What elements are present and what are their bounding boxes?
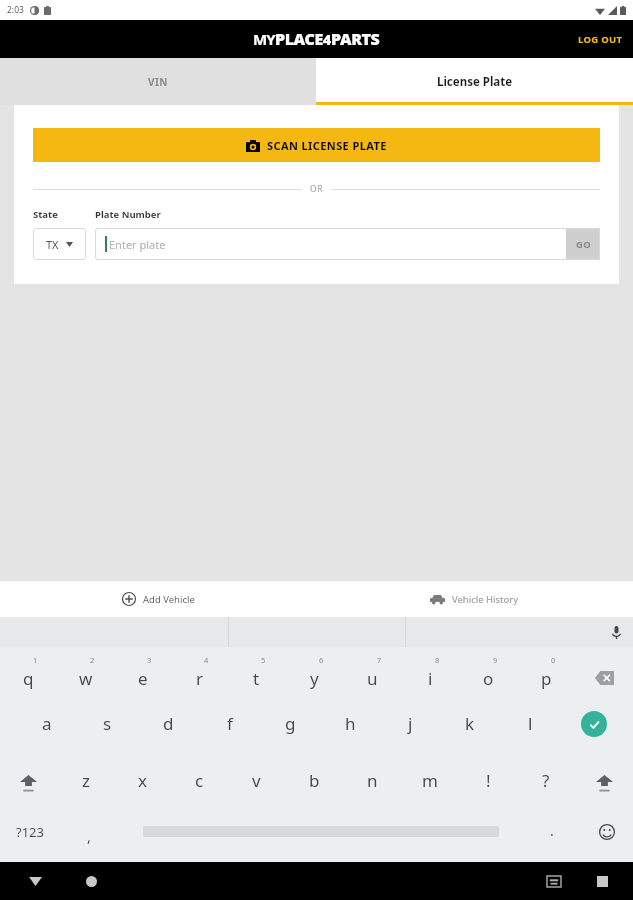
staticText: Add Vehicle bbox=[143, 593, 195, 606]
staticText: p bbox=[541, 667, 552, 690]
staticText: c bbox=[195, 769, 204, 792]
button[interactable]: 2 bbox=[57, 647, 114, 702]
staticText: Vehicle History bbox=[452, 593, 519, 606]
staticText: State bbox=[33, 208, 58, 221]
button[interactable]: TX bbox=[33, 228, 86, 260]
staticText: ?123 bbox=[16, 823, 44, 841]
button[interactable]: l bbox=[500, 702, 560, 757]
button[interactable]: Back bbox=[22, 868, 48, 894]
staticText: 7 bbox=[377, 655, 382, 665]
staticText: 0 bbox=[551, 655, 556, 665]
button[interactable]: 5 bbox=[228, 647, 285, 702]
staticText: i bbox=[428, 667, 433, 690]
button[interactable]: j bbox=[380, 702, 440, 757]
button[interactable]: LOG OUT bbox=[568, 25, 633, 54]
staticText: 3 bbox=[147, 655, 152, 665]
button[interactable]: Vehicle History bbox=[316, 581, 633, 617]
staticText: f bbox=[227, 712, 233, 735]
staticText: 9 bbox=[493, 655, 498, 665]
staticText: v bbox=[252, 769, 261, 792]
staticText: LOG OUT bbox=[578, 33, 623, 46]
button[interactable]: g bbox=[260, 702, 320, 757]
staticText: 8 bbox=[435, 655, 440, 665]
button[interactable]: h bbox=[320, 702, 380, 757]
button[interactable]: m bbox=[401, 757, 459, 812]
button[interactable]: f bbox=[199, 702, 260, 757]
staticText: ? bbox=[542, 769, 550, 792]
staticText: PLACE bbox=[275, 28, 323, 50]
button[interactable]: Backspace bbox=[575, 647, 633, 702]
button[interactable]: Shift bbox=[575, 757, 633, 812]
button[interactable]: ? bbox=[517, 757, 575, 812]
staticText: MY bbox=[253, 29, 275, 49]
staticText: 4 bbox=[204, 655, 209, 665]
button[interactable]: License Plate bbox=[316, 58, 633, 105]
button[interactable]: 8 bbox=[401, 647, 459, 702]
button[interactable]: 3 bbox=[114, 647, 171, 702]
staticText: m bbox=[422, 769, 438, 792]
button[interactable]: 6 bbox=[285, 647, 343, 702]
staticText: l bbox=[528, 712, 533, 735]
button[interactable]: d bbox=[138, 702, 199, 757]
staticText: d bbox=[163, 712, 174, 735]
button[interactable]: Add Vehicle bbox=[0, 581, 316, 617]
button[interactable]: ! bbox=[459, 757, 517, 812]
button[interactable]: 9 bbox=[459, 647, 517, 702]
staticText: VIN bbox=[148, 75, 168, 89]
button[interactable]: GO bbox=[566, 228, 600, 260]
staticText: t bbox=[253, 667, 260, 690]
staticText: b bbox=[309, 769, 320, 792]
staticText: a bbox=[42, 712, 52, 735]
button[interactable]: x bbox=[114, 757, 171, 812]
staticText: y bbox=[310, 667, 319, 690]
staticText: j bbox=[408, 712, 413, 735]
button[interactable]: c bbox=[171, 757, 228, 812]
staticText: Plate Number bbox=[95, 208, 161, 221]
staticText: z bbox=[82, 769, 90, 792]
staticText: License Plate bbox=[437, 74, 513, 90]
staticText: ! bbox=[486, 769, 491, 792]
button[interactable]: . bbox=[523, 812, 581, 862]
button[interactable]: v bbox=[228, 757, 285, 812]
button[interactable]: Keyboard bbox=[541, 868, 567, 894]
staticText: 5 bbox=[261, 655, 266, 665]
staticText: u bbox=[367, 667, 378, 690]
staticText: 2:03 bbox=[7, 4, 24, 16]
button[interactable]: SCAN LICENSE PLATE bbox=[33, 128, 600, 162]
button[interactable]: z bbox=[57, 757, 114, 812]
staticText: GO bbox=[576, 238, 591, 251]
staticText: OR bbox=[310, 183, 323, 195]
staticText: 6 bbox=[319, 655, 324, 665]
staticText: w bbox=[79, 667, 93, 690]
button[interactable]: Enter plate bbox=[95, 228, 566, 260]
staticText: 4 bbox=[323, 30, 331, 49]
staticText: 1 bbox=[33, 655, 38, 665]
button[interactable]: 7 bbox=[343, 647, 401, 702]
button[interactable]: 4 bbox=[171, 647, 228, 702]
button[interactable]: ?123 bbox=[0, 812, 60, 862]
staticText: TX bbox=[46, 237, 59, 252]
staticText: g bbox=[285, 712, 296, 735]
staticText: 2 bbox=[90, 655, 95, 665]
button[interactable]: 1 bbox=[0, 647, 57, 702]
button[interactable]: Recents bbox=[589, 868, 615, 894]
button[interactable]: Shift bbox=[0, 757, 57, 812]
button[interactable]: 0 bbox=[517, 647, 575, 702]
staticText: SCAN LICENSE PLATE bbox=[267, 138, 387, 153]
staticText: . bbox=[550, 821, 554, 840]
button[interactable]: b bbox=[285, 757, 343, 812]
button[interactable]: Emoji bbox=[581, 812, 633, 862]
button[interactable]: n bbox=[343, 757, 401, 812]
button[interactable]: VIN bbox=[0, 58, 316, 105]
button[interactable]: , bbox=[60, 812, 118, 862]
staticText: o bbox=[483, 667, 494, 690]
staticText: s bbox=[103, 712, 112, 735]
button[interactable]: Space bbox=[118, 812, 523, 862]
button[interactable]: Home bbox=[78, 868, 104, 894]
staticText: q bbox=[23, 667, 34, 690]
button[interactable]: a bbox=[16, 702, 77, 757]
staticText: e bbox=[138, 667, 148, 690]
button[interactable]: s bbox=[77, 702, 138, 757]
button[interactable]: Enter bbox=[560, 702, 627, 757]
button[interactable]: k bbox=[440, 702, 500, 757]
